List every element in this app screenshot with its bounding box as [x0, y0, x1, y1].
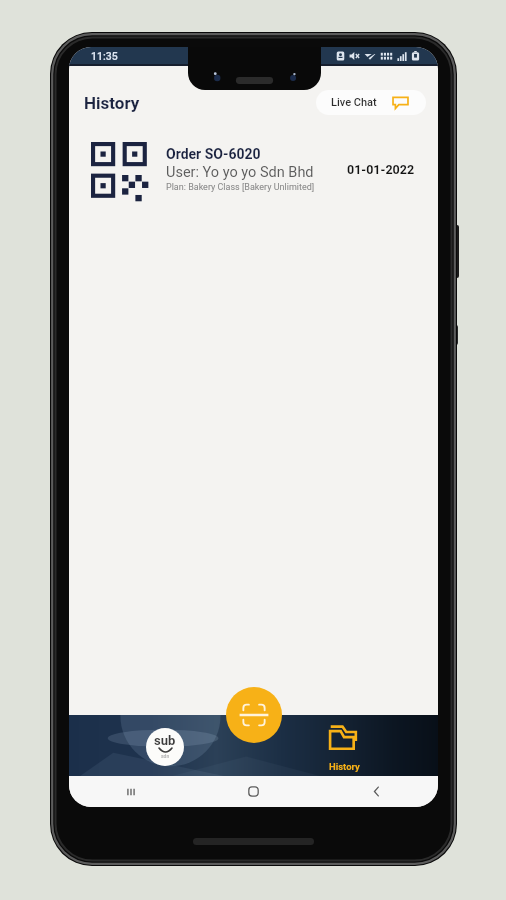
staticText: sdn	[161, 753, 170, 759]
button[interactable]: Back	[315, 776, 438, 807]
button[interactable]: Live Chat	[316, 90, 426, 115]
staticText: Live Chat	[331, 96, 377, 109]
staticText: 01-01-2022	[347, 162, 415, 177]
button[interactable]: Recents	[69, 776, 192, 807]
button[interactable]: Subscription	[146, 728, 184, 766]
other: Recents	[124, 785, 138, 799]
staticText: sub	[154, 733, 176, 748]
other: Home	[247, 785, 260, 798]
staticText: Plan: Bakery Class [Bakery Unlimited]	[166, 182, 315, 193]
button[interactable]: History	[318, 720, 370, 775]
staticText: 11:35	[91, 50, 118, 62]
staticText: Order SO-6020	[166, 146, 261, 162]
button[interactable]: Scan QR code	[226, 687, 282, 743]
other: Back	[370, 785, 383, 798]
staticText: User: Yo yo yo Sdn Bhd	[166, 164, 314, 181]
button[interactable]: Home	[192, 776, 315, 807]
staticText: History	[84, 93, 140, 113]
staticText: History	[329, 761, 360, 772]
button[interactable]: Order SO-6020	[69, 140, 438, 205]
